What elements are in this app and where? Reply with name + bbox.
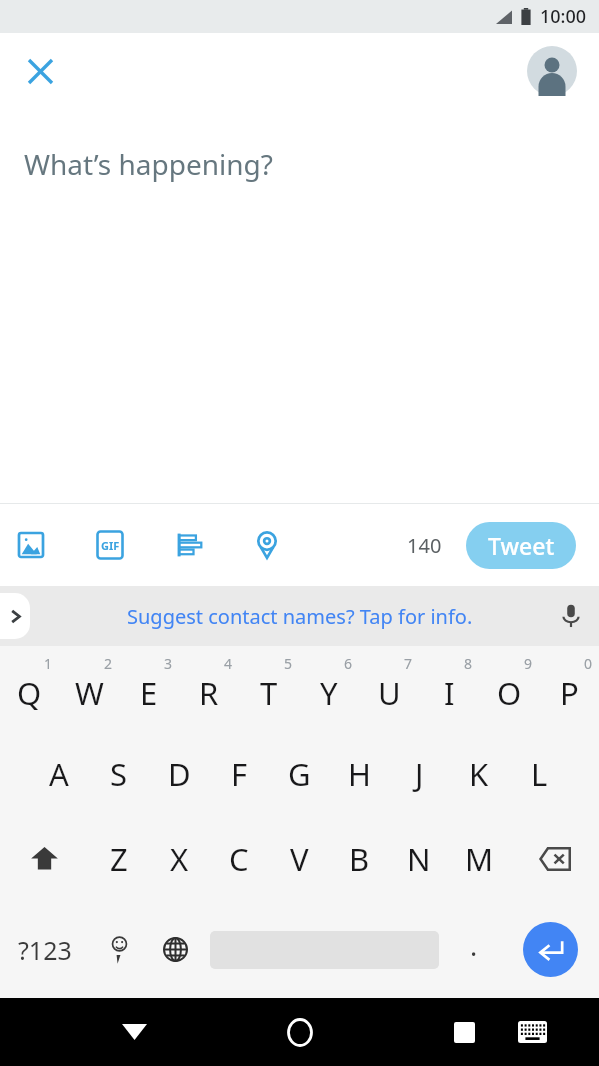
button[interactable]: N xyxy=(389,816,449,901)
staticText: Y xyxy=(320,672,338,714)
staticText: K xyxy=(469,753,489,795)
button[interactable]: F xyxy=(209,731,269,816)
staticText: N xyxy=(407,838,431,880)
staticText: X xyxy=(170,838,189,880)
button[interactable]: X xyxy=(149,816,209,901)
staticText: 140 xyxy=(407,532,442,559)
button[interactable]: Change language xyxy=(147,901,204,998)
button[interactable]: Profile xyxy=(527,46,577,96)
button[interactable]: Home xyxy=(276,1008,324,1056)
staticText: D xyxy=(168,753,191,795)
staticText: R xyxy=(199,672,219,714)
button[interactable]: Expand suggestions xyxy=(0,593,30,639)
button[interactable]: P xyxy=(539,646,599,731)
button[interactable]: Shift xyxy=(0,816,89,901)
staticText: U xyxy=(378,672,401,714)
button[interactable]: H xyxy=(329,731,389,816)
button[interactable]: Enter xyxy=(502,901,599,998)
staticText: 5 xyxy=(284,654,293,673)
button[interactable]: E xyxy=(119,646,179,731)
button[interactable]: M xyxy=(449,816,509,901)
staticText: F xyxy=(231,753,248,795)
button[interactable]: Recent apps xyxy=(440,1008,488,1056)
button[interactable]: I xyxy=(419,646,479,731)
button[interactable]: Tweet xyxy=(466,522,576,569)
staticText: M xyxy=(465,838,494,880)
button[interactable]: Suggest contact names? Tap for info. xyxy=(127,603,473,630)
button[interactable]: Z xyxy=(89,816,149,901)
staticText: 4 xyxy=(224,654,233,673)
button[interactable]: Backspace xyxy=(509,816,599,901)
button[interactable]: Add poll xyxy=(165,521,213,569)
staticText: S xyxy=(110,753,128,795)
button[interactable]: Add location xyxy=(243,521,291,569)
button[interactable]: Add GIF xyxy=(86,521,134,569)
staticText: E xyxy=(140,672,158,714)
staticText: . xyxy=(470,927,478,964)
staticText: Z xyxy=(110,838,128,880)
button[interactable]: ?123 xyxy=(0,901,90,998)
staticText: B xyxy=(349,838,370,880)
staticText: 8 xyxy=(464,654,473,673)
button[interactable]: Switch keyboard xyxy=(508,1008,556,1056)
button[interactable]: O xyxy=(479,646,539,731)
staticText: What’s happening? xyxy=(24,145,273,183)
staticText: GIF xyxy=(101,538,120,553)
button[interactable]: A xyxy=(29,731,89,816)
staticText: 2 xyxy=(104,654,113,673)
button[interactable]: C xyxy=(209,816,269,901)
button[interactable]: Add photo xyxy=(7,521,55,569)
button[interactable]: Q xyxy=(0,646,59,731)
staticText: 1 xyxy=(44,654,53,673)
button[interactable]: R xyxy=(179,646,239,731)
staticText: I xyxy=(444,672,455,714)
staticText: H xyxy=(348,753,371,795)
button[interactable]: B xyxy=(329,816,389,901)
staticText: 10:00 xyxy=(540,4,587,29)
button[interactable]: K xyxy=(449,731,509,816)
button[interactable]: L xyxy=(509,731,569,816)
staticText: Q xyxy=(17,672,42,714)
staticText: C xyxy=(229,838,249,880)
button[interactable]: U xyxy=(359,646,419,731)
staticText: W xyxy=(75,672,104,714)
button[interactable]: What’s happening? xyxy=(0,108,599,503)
button[interactable]: . xyxy=(445,901,502,998)
staticText: 3 xyxy=(164,654,173,673)
button[interactable]: G xyxy=(269,731,329,816)
staticText: ?123 xyxy=(18,933,72,967)
button[interactable]: T xyxy=(239,646,299,731)
button[interactable]: D xyxy=(149,731,209,816)
staticText: V xyxy=(290,838,309,880)
staticText: T xyxy=(260,672,278,714)
staticText: G xyxy=(288,753,311,795)
staticText: Tweet xyxy=(488,530,555,561)
staticText: 6 xyxy=(344,654,353,673)
button[interactable]: V xyxy=(269,816,329,901)
staticText: L xyxy=(531,753,548,795)
button[interactable]: Voice input xyxy=(548,593,594,639)
button[interactable]: Space xyxy=(204,901,445,998)
button[interactable]: Emoji xyxy=(90,901,147,998)
staticText: J xyxy=(415,753,424,795)
staticText: 7 xyxy=(404,654,413,673)
button[interactable]: Close xyxy=(16,47,64,95)
staticText: 0 xyxy=(584,654,593,673)
staticText: O xyxy=(497,672,522,714)
staticText: A xyxy=(49,753,69,795)
staticText: P xyxy=(560,672,579,714)
staticText: 9 xyxy=(524,654,533,673)
button[interactable]: W xyxy=(59,646,119,731)
button[interactable]: S xyxy=(89,731,149,816)
button[interactable]: Back xyxy=(110,1008,158,1056)
button[interactable]: Y xyxy=(299,646,359,731)
button[interactable]: J xyxy=(389,731,449,816)
